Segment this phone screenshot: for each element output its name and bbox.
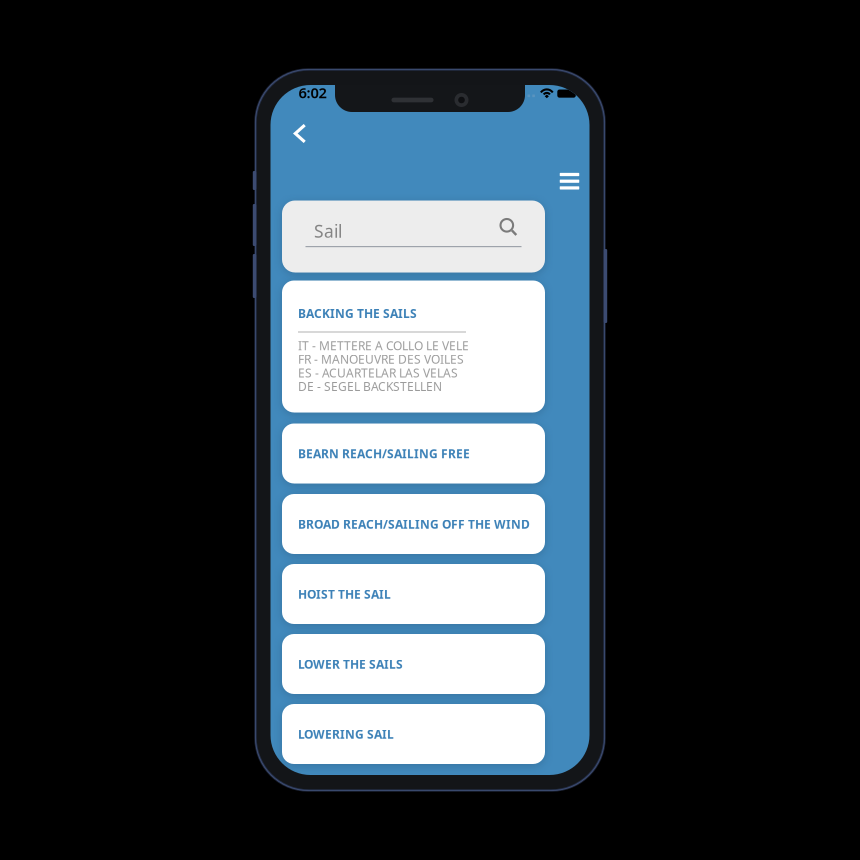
staticText: LOWER THE SAILS [298, 656, 403, 672]
button[interactable]: BEARN REACH/SAILING FREE [282, 423, 545, 483]
staticText: ES - ACUARTELAR LAS VELAS [298, 365, 458, 381]
staticText: BEARN REACH/SAILING FREE [298, 445, 470, 461]
staticText: Sail [314, 219, 342, 242]
staticText: DE - SEGEL BACKSTELLEN [298, 378, 442, 394]
staticText: HOIST THE SAIL [298, 586, 391, 602]
staticText: BACKING THE SAILS [298, 305, 417, 321]
staticText: LOWERING SAIL [298, 726, 394, 742]
staticText: IT - METTERE A COLLO LE VELE [298, 337, 469, 353]
button[interactable]: Back [280, 113, 320, 153]
staticText: BROAD REACH/SAILING OFF THE WIND [298, 516, 530, 532]
button[interactable]: Menu [549, 161, 589, 201]
staticText: 6:02 [298, 83, 326, 102]
button[interactable]: LOWERING SAIL [282, 704, 545, 764]
button[interactable]: Sail [282, 200, 545, 272]
button[interactable]: BROAD REACH/SAILING OFF THE WIND [282, 494, 545, 554]
button[interactable]: LOWER THE SAILS [282, 634, 545, 694]
staticText: FR - MANOEUVRE DES VOILES [298, 351, 464, 367]
button[interactable]: BACKING THE SAILS [282, 280, 545, 412]
button[interactable]: HOIST THE SAIL [282, 564, 545, 624]
